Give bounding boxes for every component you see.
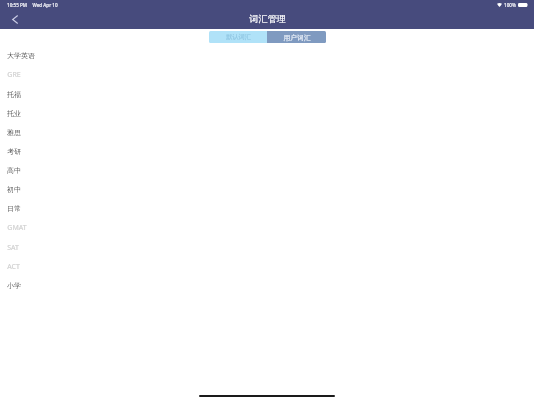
button[interactable]: Back xyxy=(7,11,23,27)
staticText: 词汇管理 xyxy=(249,13,286,25)
button[interactable]: 大学英语 xyxy=(0,46,534,65)
staticText: 考研 xyxy=(7,147,21,156)
button[interactable]: 考研 xyxy=(0,142,534,161)
staticText: 大学英语 xyxy=(7,51,35,60)
staticText: 用户词汇 xyxy=(283,33,311,42)
staticText: 100% xyxy=(504,2,516,8)
staticText: 初中 xyxy=(7,185,21,194)
staticText: 雅思 xyxy=(7,128,21,137)
button[interactable]: 日常 xyxy=(0,199,534,218)
button[interactable]: 小学 xyxy=(0,276,534,295)
staticText: GRE xyxy=(7,70,21,80)
staticText: ACT xyxy=(7,262,20,272)
staticText: 高中 xyxy=(7,166,21,175)
staticText: 托福 xyxy=(7,90,21,99)
button[interactable]: 托福 xyxy=(0,85,534,104)
button[interactable]: 用户词汇 xyxy=(267,31,326,43)
staticText: 小学 xyxy=(7,281,21,290)
button[interactable]: 托业 xyxy=(0,104,534,123)
staticText: 日常 xyxy=(7,204,21,213)
staticText: 默认词汇 xyxy=(226,33,251,41)
button[interactable]: 默认词汇 xyxy=(209,31,267,43)
staticText: Wed Apr 10 xyxy=(32,2,58,8)
staticText: 托业 xyxy=(7,109,21,118)
button[interactable]: 雅思 xyxy=(0,123,534,142)
button[interactable]: 初中 xyxy=(0,180,534,199)
staticText: SAT xyxy=(7,243,19,253)
staticText: GMAT xyxy=(7,223,27,233)
staticText: 10:55 PM xyxy=(7,2,27,8)
button[interactable]: 高中 xyxy=(0,161,534,180)
